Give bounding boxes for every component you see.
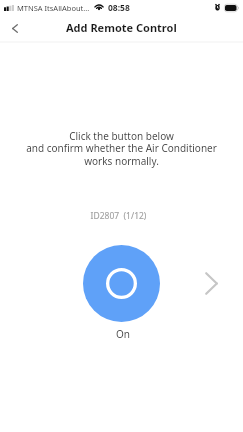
staticText: ID2807 (1/12) xyxy=(0,210,240,222)
staticText: Add Remote Control xyxy=(66,20,177,35)
button[interactable]: Back xyxy=(1,16,29,40)
staticText: MTNSA ItsAllAbout... xyxy=(17,3,90,13)
staticText: 08:58 xyxy=(108,2,130,14)
button[interactable]: Power On xyxy=(83,245,160,322)
staticText: On xyxy=(116,327,130,341)
button[interactable]: Next xyxy=(197,269,225,297)
staticText: Click the button below and confirm wheth… xyxy=(0,129,243,168)
